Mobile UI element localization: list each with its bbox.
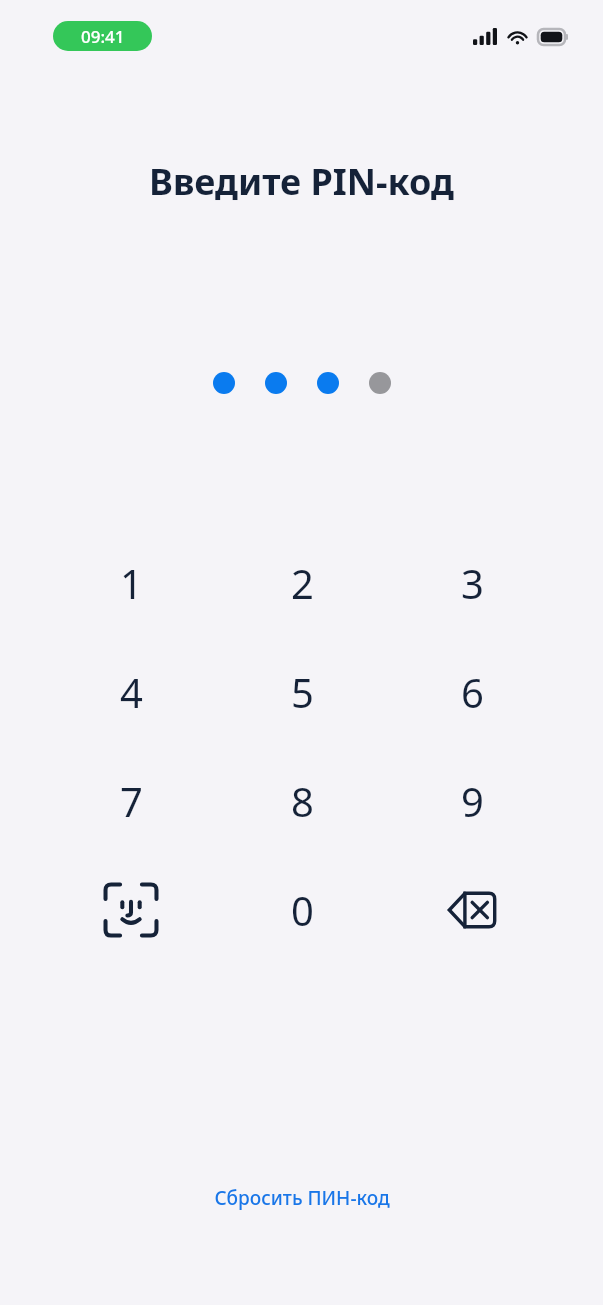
staticText: 0 [291, 883, 314, 937]
button[interactable]: 9 [424, 751, 520, 851]
staticText: 1 [120, 556, 143, 610]
button[interactable]: 6 [424, 642, 520, 742]
button[interactable]: 4 [83, 642, 179, 742]
staticText: 3 [461, 556, 484, 610]
button[interactable]: Delete [424, 860, 520, 960]
button[interactable]: 8 [254, 751, 350, 851]
staticText: 7 [120, 774, 143, 828]
button[interactable]: 0 [254, 860, 350, 960]
staticText: Введите PIN-код [0, 157, 603, 206]
staticText: 09:41 [81, 25, 125, 48]
staticText: 5 [291, 665, 314, 719]
staticText: Сбросить ПИН-код [214, 1185, 390, 1211]
button[interactable]: 1 [83, 533, 179, 633]
staticText: 8 [291, 774, 314, 828]
button[interactable]: Face ID [83, 860, 179, 960]
staticText: 4 [120, 665, 143, 719]
staticText: 9 [461, 774, 484, 828]
staticText: 6 [461, 665, 484, 719]
button[interactable]: 7 [83, 751, 179, 851]
button[interactable]: Сбросить ПИН-код [0, 1175, 603, 1221]
button[interactable]: 3 [424, 533, 520, 633]
button[interactable]: 2 [254, 533, 350, 633]
button[interactable]: 5 [254, 642, 350, 742]
staticText: 2 [291, 556, 314, 610]
